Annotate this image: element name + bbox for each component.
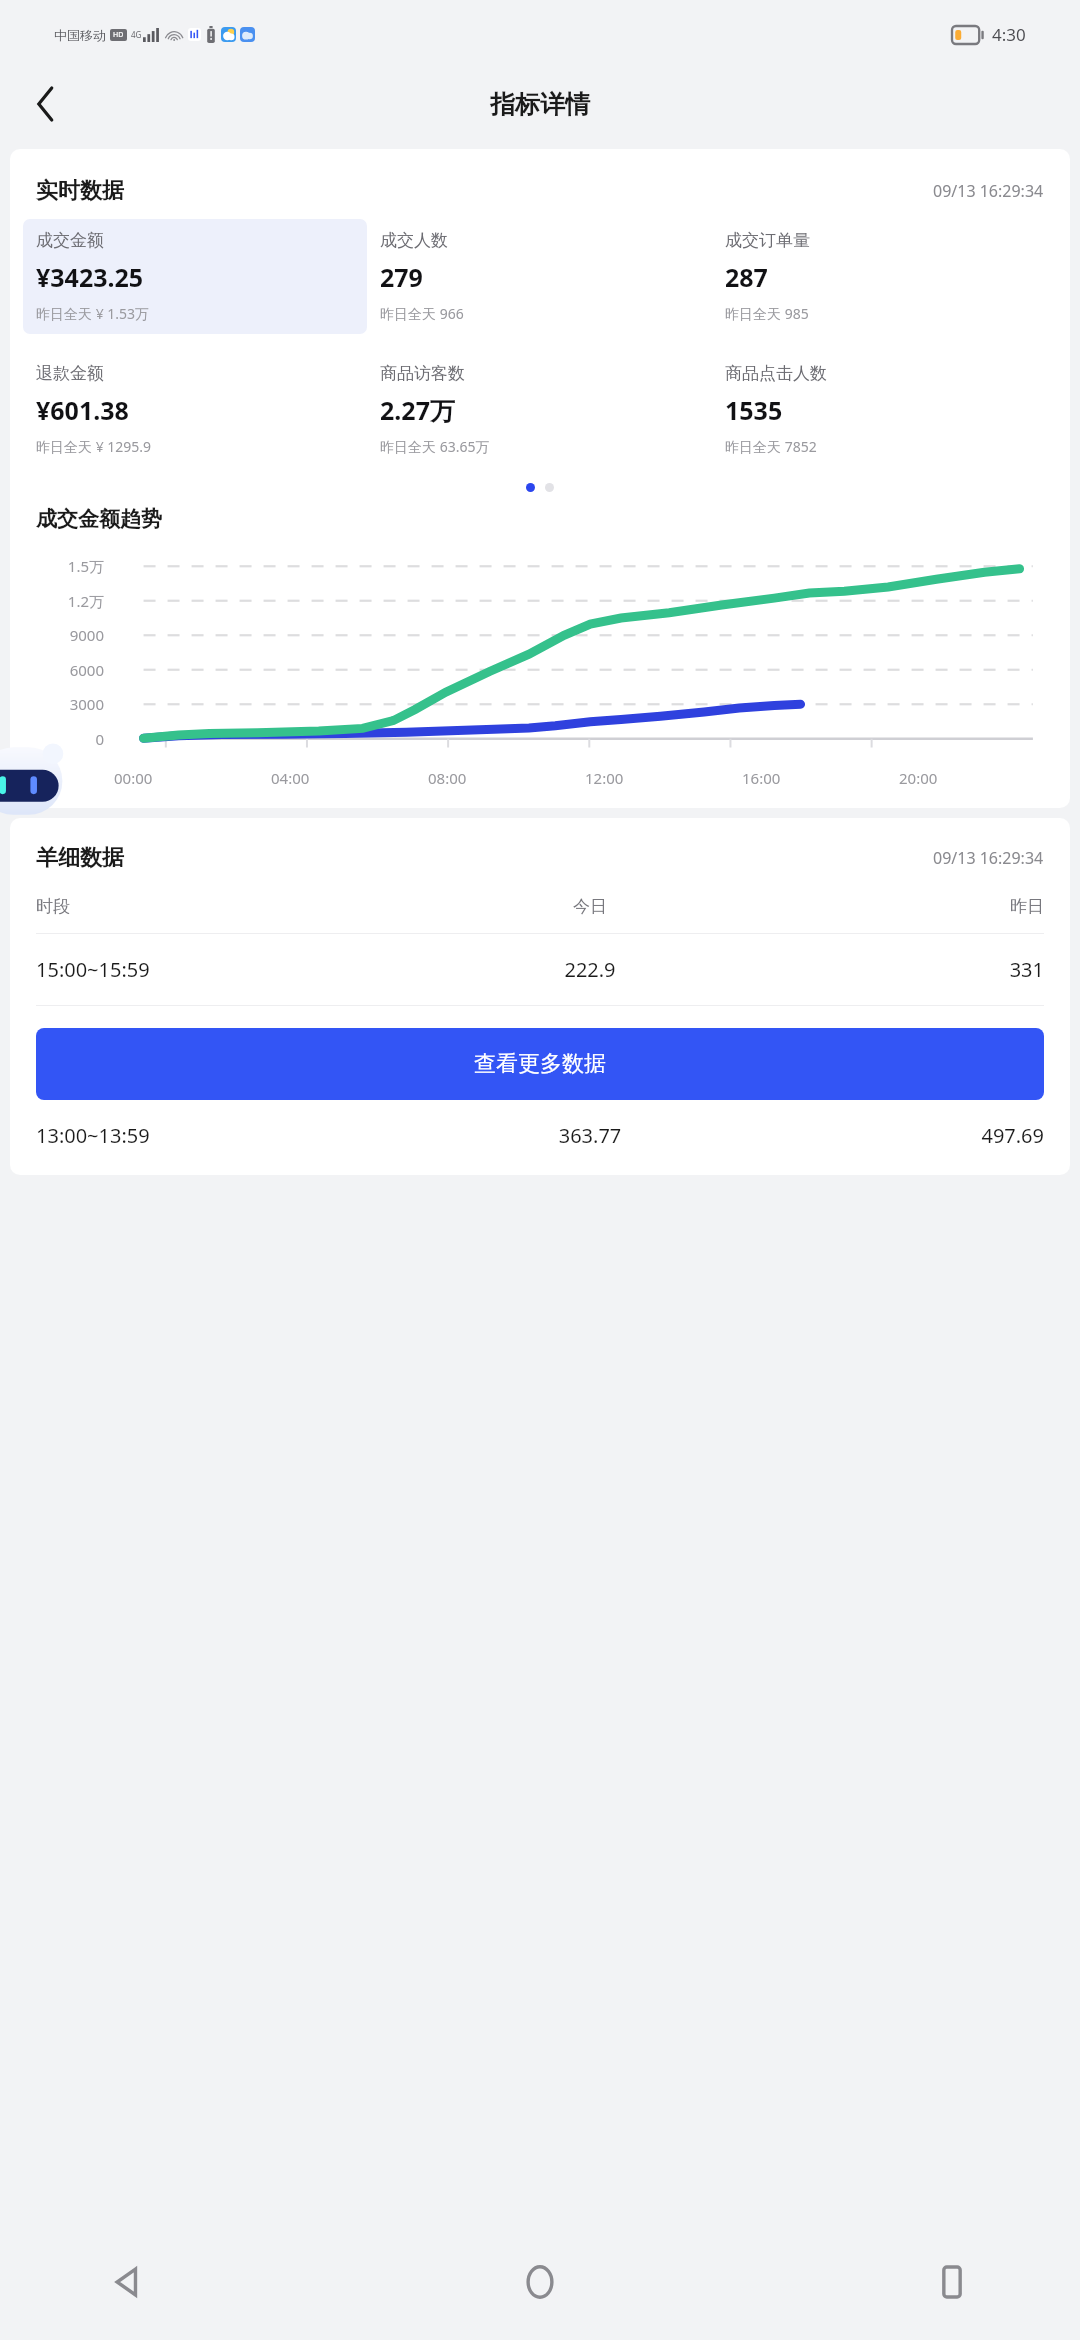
button[interactable]: 退款金额 — [23, 352, 367, 467]
staticText: ¥3423.25 — [36, 260, 144, 294]
staticText: 中国移动 — [54, 27, 106, 43]
staticText: 昨日全天 ¥ 1.53万 — [36, 304, 150, 323]
staticText: 1.2万 — [10, 591, 104, 611]
staticText: 16:00 — [742, 768, 781, 788]
staticText: 羊细数据 — [36, 844, 124, 872]
staticText: 13:00~13:59 — [36, 1122, 422, 1149]
staticText: 昨日全天 7852 — [725, 437, 817, 456]
button[interactable]: Home — [502, 2244, 578, 2320]
staticText: 00:00 — [114, 768, 153, 788]
staticText: 1535 — [725, 393, 783, 427]
staticText: 15:00~15:59 — [36, 956, 422, 983]
staticText: 指标详情 — [490, 89, 590, 120]
staticText: 成交订单量 — [725, 230, 810, 251]
button[interactable]: 商品访客数 — [367, 352, 712, 467]
staticText: 退款金额 — [36, 363, 104, 384]
button[interactable]: Assistant — [0, 734, 68, 828]
staticText: 商品访客数 — [380, 363, 465, 384]
staticText: 6000 — [10, 660, 104, 680]
staticText: 0 — [10, 729, 104, 749]
staticText: 成交人数 — [380, 230, 448, 251]
staticText: 4:30 — [992, 23, 1026, 46]
staticText: 12:00 — [585, 768, 624, 788]
button[interactable]: Back — [18, 76, 74, 132]
staticText: 09/13 16:29:34 — [933, 180, 1044, 202]
staticText: 昨日 — [758, 896, 1044, 917]
staticText: 331 — [758, 956, 1044, 983]
staticText: 2.27万 — [380, 393, 455, 427]
button[interactable]: 13:00~13:59 — [10, 1100, 1070, 1171]
staticText: 昨日全天 985 — [725, 304, 809, 323]
button[interactable]: Back — [90, 2244, 166, 2320]
staticText: 04:00 — [271, 768, 310, 788]
staticText: 287 — [725, 260, 768, 294]
staticText: 20:00 — [899, 768, 938, 788]
button[interactable]: 15:00~15:59 — [10, 934, 1070, 1005]
staticText: 成交金额趋势 — [36, 506, 162, 532]
staticText: 今日 — [422, 896, 758, 917]
staticText: 昨日全天 966 — [380, 304, 464, 323]
staticText: 279 — [380, 260, 423, 294]
button[interactable]: 成交人数 — [367, 219, 712, 334]
staticText: 昨日全天 ¥ 1295.9 — [36, 437, 152, 456]
staticText: 查看更多数据 — [474, 1050, 606, 1078]
button[interactable]: 成交金额 — [23, 219, 367, 334]
staticText: 4G — [131, 29, 142, 40]
staticText: 实时数据 — [36, 177, 124, 205]
button[interactable]: Recent apps — [914, 2244, 990, 2320]
staticText: 08:00 — [428, 768, 467, 788]
staticText: HD — [113, 30, 124, 40]
staticText: 昨日全天 63.65万 — [380, 437, 490, 456]
staticText: 222.9 — [422, 956, 758, 983]
button[interactable]: 成交订单量 — [712, 219, 1057, 334]
staticText: 时段 — [36, 896, 422, 917]
staticText: 商品点击人数 — [725, 363, 827, 384]
button[interactable]: 查看更多数据 — [36, 1028, 1044, 1100]
staticText: 3000 — [10, 694, 104, 714]
staticText: ¥601.38 — [36, 393, 129, 427]
button[interactable]: 商品点击人数 — [712, 352, 1057, 467]
staticText: 9000 — [10, 625, 104, 645]
staticText: 497.69 — [758, 1122, 1044, 1149]
staticText: 1.5万 — [10, 556, 104, 576]
staticText: 363.77 — [422, 1122, 758, 1149]
staticText: 成交金额 — [36, 230, 104, 251]
staticText: 09/13 16:29:34 — [933, 847, 1044, 869]
